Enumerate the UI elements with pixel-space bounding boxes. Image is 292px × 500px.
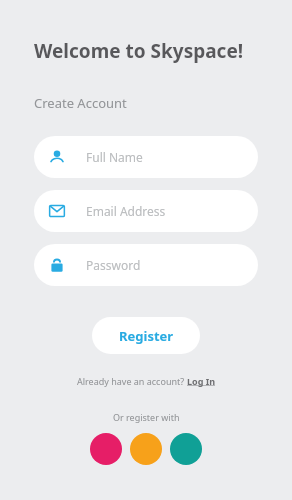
button[interactable]: Password — [34, 244, 258, 286]
staticText: Full Name — [86, 149, 143, 165]
staticText: Password — [86, 257, 141, 273]
staticText: Email Address — [86, 203, 166, 219]
staticText: Already have an account? — [77, 375, 187, 387]
staticText: Log In — [187, 375, 216, 387]
button[interactable]: Full Name — [34, 136, 258, 178]
button[interactable]: Register — [92, 317, 200, 354]
staticText: Or register with — [113, 411, 180, 423]
staticText: Create Account — [34, 94, 127, 112]
staticText: Welcome to Skyspace! — [34, 38, 244, 64]
button[interactable]: Register with Google — [130, 433, 162, 465]
button[interactable]: Register with Dribbble — [90, 433, 122, 465]
button[interactable]: Email Address — [34, 190, 258, 232]
button[interactable]: Log In — [187, 375, 216, 387]
staticText: Register — [119, 327, 174, 345]
button[interactable]: Register with Twitter — [170, 433, 202, 465]
